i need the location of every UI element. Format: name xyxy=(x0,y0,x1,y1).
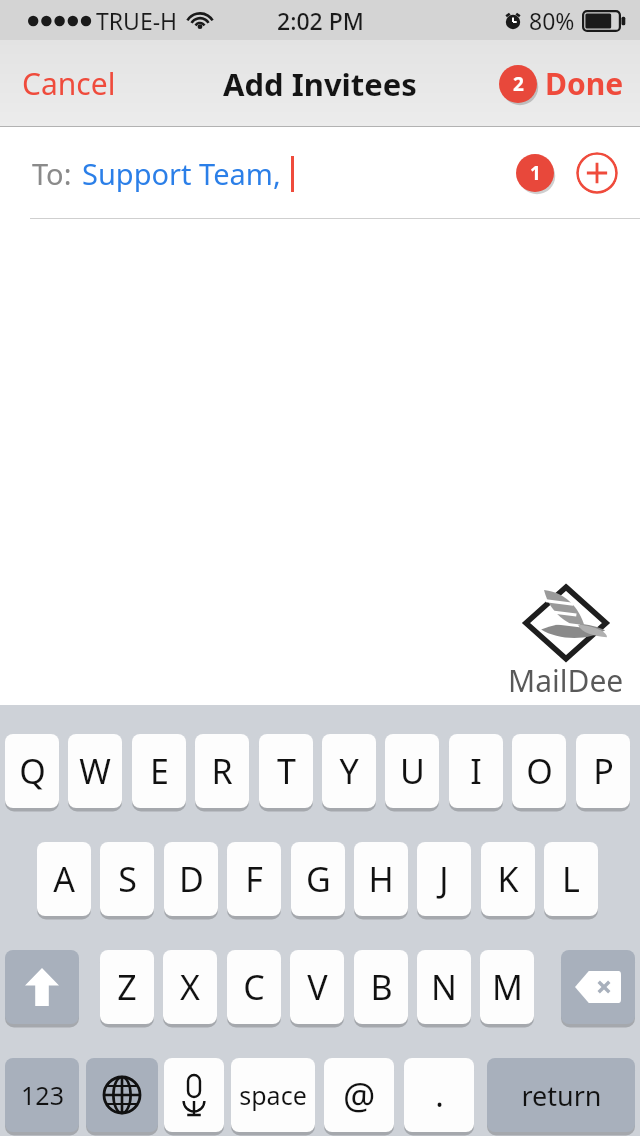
staticText: S xyxy=(118,856,137,902)
staticText: F xyxy=(245,856,263,902)
staticText: E xyxy=(150,748,169,794)
button[interactable]: P xyxy=(576,734,630,808)
staticText: 2:02 PM xyxy=(277,5,364,36)
button[interactable]: S xyxy=(100,842,154,916)
button[interactable]: T xyxy=(259,734,313,808)
button[interactable]: H xyxy=(354,842,408,916)
staticText: . xyxy=(435,1073,444,1117)
button[interactable]: Support Team, xyxy=(82,154,281,193)
staticText: TRUE-H xyxy=(96,5,178,36)
staticText: 80% xyxy=(529,5,575,36)
staticText: O xyxy=(526,748,553,794)
staticText: G xyxy=(306,856,331,902)
staticText: U xyxy=(400,748,425,794)
button[interactable]: C xyxy=(227,950,281,1024)
button[interactable]: B xyxy=(354,950,408,1024)
button[interactable]: L xyxy=(544,842,598,916)
button[interactable]: D xyxy=(164,842,218,916)
button[interactable]: N xyxy=(417,950,471,1024)
button[interactable]: Shift xyxy=(5,950,79,1024)
button[interactable]: V xyxy=(290,950,344,1024)
button[interactable]: X xyxy=(163,950,217,1024)
staticText: return xyxy=(521,1077,602,1114)
staticText: Done xyxy=(545,63,624,104)
staticText: C xyxy=(243,964,265,1010)
staticText: D xyxy=(179,856,204,902)
staticText: Add Invitees xyxy=(223,63,417,105)
button[interactable]: 123 xyxy=(5,1058,79,1132)
staticText: B xyxy=(370,964,393,1010)
staticText: L xyxy=(562,856,580,902)
staticText: K xyxy=(497,856,519,902)
staticText: P xyxy=(593,748,614,794)
button[interactable]: I xyxy=(449,734,503,808)
button[interactable]: Z xyxy=(100,950,154,1024)
staticText: space xyxy=(239,1078,307,1112)
staticText: W xyxy=(79,748,111,794)
button[interactable]: Y xyxy=(322,734,376,808)
button[interactable]: Q xyxy=(5,734,59,808)
staticText: T xyxy=(277,748,296,794)
button[interactable]: E xyxy=(132,734,186,808)
button[interactable]: K xyxy=(481,842,535,916)
button[interactable]: G xyxy=(291,842,345,916)
button[interactable]: W xyxy=(68,734,122,808)
staticText: 1 xyxy=(530,160,541,186)
button[interactable]: J xyxy=(417,842,471,916)
button[interactable]: Cancel xyxy=(6,55,132,112)
staticText: J xyxy=(439,856,449,902)
staticText: R xyxy=(211,748,233,794)
button[interactable]: O xyxy=(512,734,566,808)
button[interactable]: space xyxy=(231,1058,315,1132)
button[interactable]: Next keyboard xyxy=(86,1058,158,1132)
staticText: @ xyxy=(343,1071,376,1120)
staticText: To: xyxy=(32,154,72,193)
button[interactable]: return xyxy=(487,1058,635,1132)
staticText: 123 xyxy=(21,1078,64,1112)
button[interactable]: At sign xyxy=(324,1058,394,1132)
button[interactable]: R xyxy=(195,734,249,808)
staticText: Z xyxy=(117,964,137,1010)
button[interactable]: Backspace xyxy=(561,950,635,1024)
staticText: Q xyxy=(19,748,46,794)
button[interactable]: F xyxy=(227,842,281,916)
staticText: M xyxy=(492,964,523,1010)
staticText: X xyxy=(180,964,200,1010)
button[interactable]: 2 xyxy=(491,57,632,110)
staticText: 2 xyxy=(513,71,524,97)
staticText: Cancel xyxy=(22,63,116,104)
staticText: MailDee xyxy=(508,660,624,701)
staticText: Y xyxy=(339,748,359,794)
staticText: I xyxy=(470,748,482,794)
button[interactable]: M xyxy=(480,950,534,1024)
staticText: N xyxy=(431,964,457,1010)
staticText: H xyxy=(368,856,394,902)
button[interactable]: U xyxy=(385,734,439,808)
button[interactable]: Add contact xyxy=(576,152,618,194)
button[interactable]: Dictate xyxy=(164,1058,224,1132)
staticText: Support Team, xyxy=(82,154,281,193)
staticText: V xyxy=(307,964,328,1010)
staticText: A xyxy=(53,856,75,902)
button[interactable]: A xyxy=(37,842,91,916)
button[interactable]: . xyxy=(404,1058,474,1132)
